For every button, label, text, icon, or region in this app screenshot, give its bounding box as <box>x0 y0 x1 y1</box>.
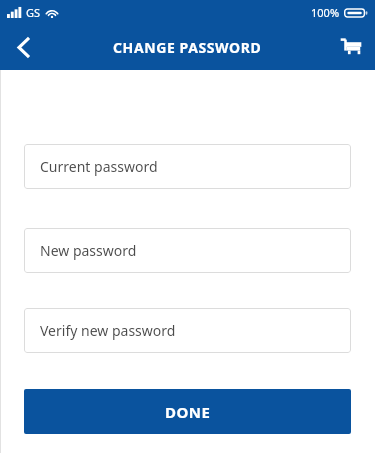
staticText: Verify new password <box>40 321 176 340</box>
button[interactable]: Current password <box>24 144 351 189</box>
button[interactable]: New password <box>24 228 351 273</box>
staticText: New password <box>40 241 137 260</box>
staticText: DONE <box>165 402 211 422</box>
button[interactable]: DONE <box>24 389 351 434</box>
staticText: CHANGE PASSWORD <box>113 38 262 57</box>
staticText: Current password <box>40 157 158 176</box>
button[interactable]: Back <box>0 24 48 70</box>
staticText: GS <box>26 5 41 20</box>
button[interactable]: Verify new password <box>24 308 351 353</box>
staticText: 100% <box>311 5 340 20</box>
button[interactable]: Cart <box>327 24 375 70</box>
